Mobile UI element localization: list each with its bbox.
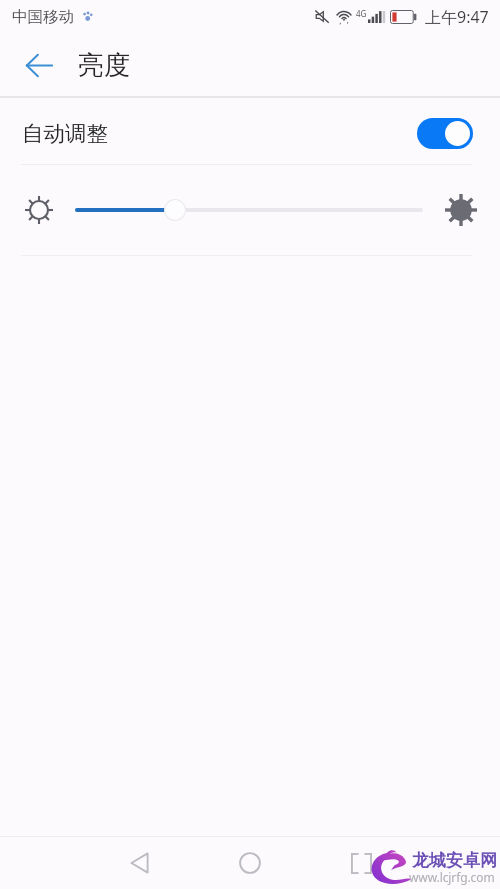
button[interactable]: 自动调整 [0,98,500,164]
staticText: www.lcjrfg.com [409,869,495,885]
button[interactable]: Back [15,41,63,89]
button[interactable]: Brightness slider [0,165,500,255]
staticText: 自动调整 [22,120,108,147]
staticText: 上午9:47 [425,6,489,28]
button[interactable]: Back [111,837,167,889]
staticText: 龙城安卓网 [412,850,497,871]
button[interactable]: Home [222,837,278,889]
button[interactable]: Recents [333,837,389,889]
button[interactable]: Auto brightness toggle [417,118,473,149]
staticText: 亮度 [78,49,130,82]
staticText: 4G [356,8,367,19]
staticText: 中国移动 [12,7,74,27]
